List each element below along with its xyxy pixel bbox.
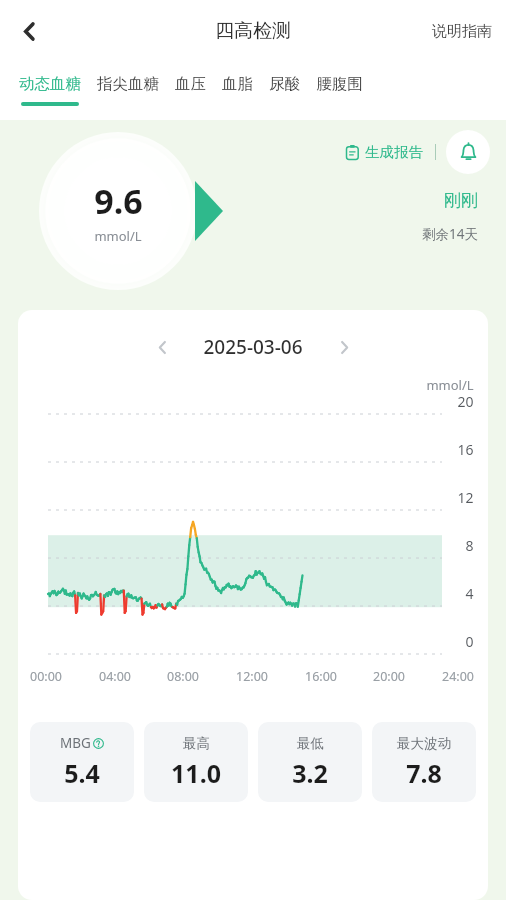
staticText: 四高检测 [215,19,291,43]
staticText: 9.6 [94,178,143,224]
button[interactable]: 血脂 [217,62,258,102]
button[interactable]: 生成报告 [341,138,427,166]
staticText: 血压 [175,74,206,94]
staticText: 20:00 [373,668,405,685]
button[interactable]: 指尖血糖 [92,62,164,102]
staticText: 指尖血糖 [97,74,159,94]
staticText: 5.4 [64,756,100,790]
button[interactable]: Previous day [145,330,179,364]
staticText: 11.0 [171,756,221,790]
button[interactable]: 动态血糖 [14,62,86,106]
button[interactable]: 最高 [144,722,248,802]
staticText: 12:00 [236,668,268,685]
button[interactable]: Alerts [446,130,490,174]
staticText: MBG [60,734,91,752]
button[interactable]: 血压 [170,62,211,102]
staticText: 剩余14天 [422,225,478,243]
staticText: 7.8 [406,756,442,790]
staticText: 4 [465,584,474,603]
staticText: mmol/L [94,227,142,245]
staticText: 8 [465,536,474,555]
staticText: 20 [457,392,474,411]
staticText: 腰腹围 [316,74,363,94]
button[interactable]: 最大波动 [372,722,476,802]
staticText: 生成报告 [365,143,423,161]
button[interactable]: 尿酸 [264,62,305,102]
staticText: 最高 [183,735,210,752]
staticText: 00:00 [30,668,62,685]
button[interactable]: 说明指南 [418,13,506,50]
button[interactable]: MBG [30,722,134,802]
staticText: 尿酸 [269,74,300,94]
staticText: 2025-03-06 [203,334,303,360]
button[interactable]: Back [6,8,52,54]
button[interactable]: Next day [327,330,361,364]
staticText: 3.2 [292,756,328,790]
button[interactable]: 最低 [258,722,362,802]
staticText: 最大波动 [397,735,451,752]
staticText: 24:00 [442,668,474,685]
staticText: 12 [457,488,474,507]
staticText: 说明指南 [432,22,492,41]
staticText: 04:00 [99,668,131,685]
staticText: 0 [465,632,474,651]
staticText: 动态血糖 [19,74,81,94]
button[interactable]: 腰腹围 [311,62,368,102]
staticText: 16:00 [305,668,337,685]
staticText: 刚刚 [444,190,478,211]
staticText: 最低 [297,735,324,752]
staticText: 血脂 [222,74,253,94]
staticText: 16 [457,440,474,459]
staticText: 08:00 [167,668,199,685]
staticText: mmol/L [426,376,474,394]
